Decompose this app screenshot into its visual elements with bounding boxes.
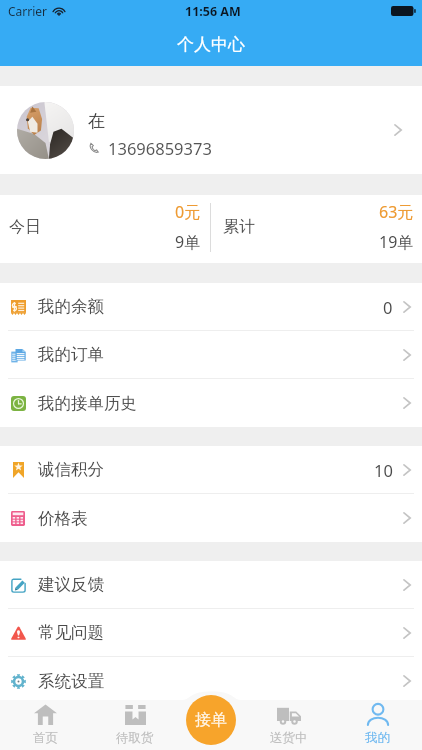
staticText: 在 (88, 110, 106, 132)
staticText: 13696859373 (108, 137, 212, 159)
button[interactable]: 送货中 (244, 700, 333, 750)
staticText: 我的 (365, 730, 390, 746)
staticText: 0元 (175, 201, 201, 223)
staticText: 价格表 (38, 508, 88, 529)
staticText: 0 (383, 296, 393, 318)
staticText: 接单 (195, 710, 227, 730)
staticText: 建议反馈 (38, 574, 104, 595)
button[interactable]: 我的订单 (0, 331, 422, 379)
button[interactable]: 我的接单历史 (0, 379, 422, 427)
button[interactable]: 我的 (333, 700, 422, 750)
staticText: 首页 (33, 730, 58, 746)
staticText: 系统设置 (38, 671, 104, 692)
staticText: 待取货 (116, 730, 154, 746)
staticText: 常见问题 (38, 622, 104, 643)
button[interactable]: 接单 (186, 695, 236, 745)
button[interactable]: 首页 (0, 700, 90, 750)
staticText: 63元 (379, 201, 414, 223)
button[interactable]: 建议反馈 (0, 561, 422, 609)
staticText: 累计 (223, 217, 255, 237)
staticText: Carrier (8, 3, 48, 19)
staticText: 诚信积分 (38, 459, 104, 480)
staticText: 我的订单 (38, 344, 104, 365)
staticText: 我的余额 (38, 296, 104, 317)
staticText: 10 (374, 459, 393, 481)
staticText: 个人中心 (177, 34, 245, 55)
button[interactable]: 我的余额 (0, 283, 422, 331)
staticText: 送货中 (270, 730, 308, 746)
button[interactable]: 诚信积分 (0, 446, 422, 494)
staticText: 11:56 AM (185, 3, 241, 20)
staticText: 9单 (175, 231, 201, 253)
staticText: 19单 (379, 231, 414, 253)
staticText: 我的接单历史 (38, 393, 137, 414)
button[interactable]: 价格表 (0, 494, 422, 542)
button[interactable]: 待取货 (90, 700, 179, 750)
button[interactable]: 系统设置 (0, 657, 422, 705)
staticText: 今日 (9, 217, 41, 237)
button[interactable]: 常见问题 (0, 609, 422, 657)
button[interactable]: 在 (0, 86, 422, 174)
